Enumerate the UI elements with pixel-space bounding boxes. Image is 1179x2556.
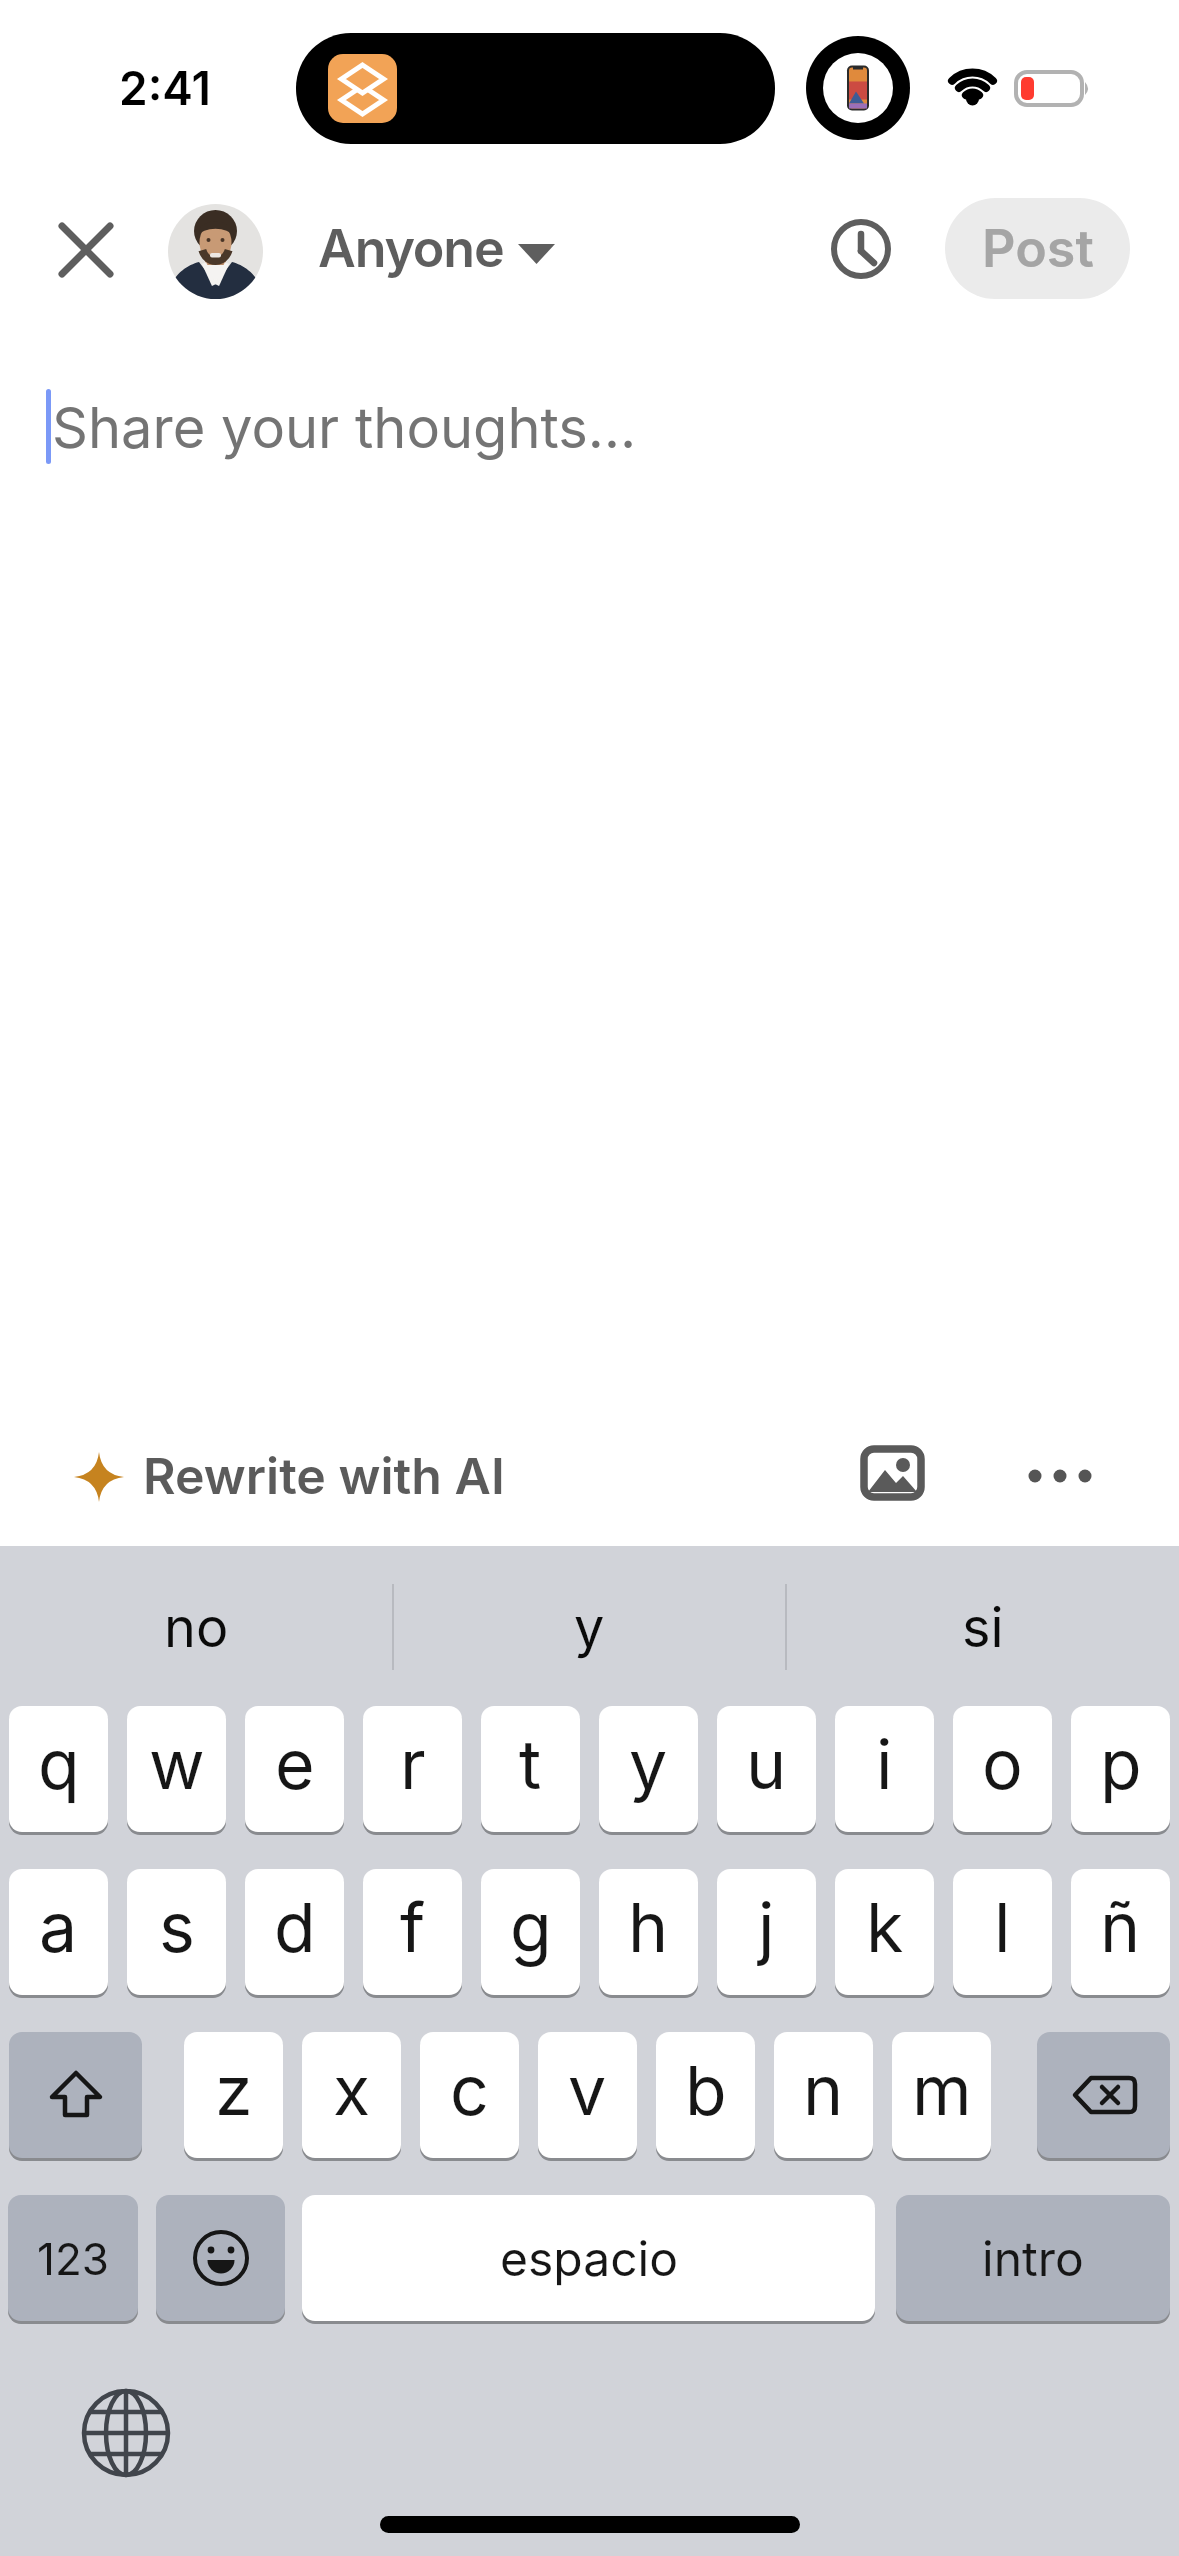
staticText: y bbox=[574, 1595, 605, 1660]
button[interactable]: i bbox=[835, 1706, 934, 1832]
staticText: c bbox=[450, 2049, 489, 2131]
staticText: b bbox=[685, 2049, 727, 2131]
button[interactable] bbox=[828, 216, 894, 282]
staticText: Share your thoughts… bbox=[52, 394, 637, 462]
staticText: u bbox=[746, 1723, 787, 1805]
button[interactable]: j bbox=[717, 1869, 816, 1995]
button[interactable]: ñ bbox=[1071, 1869, 1170, 1995]
staticText: z bbox=[215, 2049, 253, 2131]
button[interactable]: t bbox=[481, 1706, 580, 1832]
button[interactable] bbox=[78, 2385, 174, 2481]
button[interactable]: w bbox=[127, 1706, 226, 1832]
staticText: g bbox=[510, 1886, 552, 1968]
staticText: w bbox=[149, 1723, 205, 1805]
staticText: o bbox=[982, 1723, 1023, 1805]
staticText: q bbox=[38, 1723, 80, 1805]
staticText: k bbox=[866, 1886, 904, 1968]
staticText: s bbox=[159, 1886, 195, 1968]
staticText: j bbox=[758, 1886, 775, 1968]
button[interactable]: g bbox=[481, 1869, 580, 1995]
button[interactable] bbox=[156, 2195, 285, 2321]
staticText: 123 bbox=[37, 2232, 109, 2285]
staticText: d bbox=[274, 1886, 316, 1968]
button[interactable]: z bbox=[184, 2032, 283, 2158]
button[interactable]: y bbox=[393, 1580, 786, 1675]
button[interactable]: espacio bbox=[302, 2195, 875, 2321]
button[interactable]: h bbox=[599, 1869, 698, 1995]
button[interactable] bbox=[1037, 2032, 1170, 2158]
button[interactable]: c bbox=[420, 2032, 519, 2158]
staticText: espacio bbox=[500, 2229, 678, 2287]
button[interactable]: e bbox=[245, 1706, 344, 1832]
button[interactable]: b bbox=[656, 2032, 755, 2158]
staticText: p bbox=[1100, 1723, 1142, 1805]
button[interactable]: 123 bbox=[8, 2195, 138, 2321]
button[interactable]: d bbox=[245, 1869, 344, 1995]
staticText: y bbox=[629, 1723, 668, 1805]
button[interactable]: no bbox=[0, 1580, 393, 1675]
button[interactable]: f bbox=[363, 1869, 462, 1995]
button[interactable]: Post bbox=[945, 198, 1130, 299]
staticText: no bbox=[164, 1595, 229, 1660]
button[interactable]: y bbox=[599, 1706, 698, 1832]
button[interactable] bbox=[48, 212, 124, 288]
button[interactable]: Anyone bbox=[318, 198, 558, 299]
button[interactable] bbox=[9, 2032, 142, 2158]
staticText: v bbox=[568, 2049, 607, 2131]
button[interactable] bbox=[1015, 1452, 1105, 1500]
button[interactable]: r bbox=[363, 1706, 462, 1832]
button[interactable]: m bbox=[892, 2032, 991, 2158]
button[interactable]: Rewrite with AI bbox=[143, 1440, 563, 1512]
button[interactable]: s bbox=[127, 1869, 226, 1995]
button[interactable]: k bbox=[835, 1869, 934, 1995]
button[interactable] bbox=[855, 1446, 927, 1506]
staticText: a bbox=[39, 1886, 78, 1968]
staticText: m bbox=[912, 2049, 972, 2131]
staticText: n bbox=[803, 2049, 844, 2131]
staticText: t bbox=[519, 1723, 542, 1805]
button[interactable]: o bbox=[953, 1706, 1052, 1832]
button[interactable]: a bbox=[9, 1869, 108, 1995]
staticText: e bbox=[275, 1723, 315, 1805]
staticText: ñ bbox=[1100, 1886, 1141, 1968]
button[interactable]: l bbox=[953, 1869, 1052, 1995]
button[interactable]: si bbox=[786, 1580, 1179, 1675]
button[interactable]: v bbox=[538, 2032, 637, 2158]
staticText: si bbox=[962, 1595, 1004, 1660]
staticText: i bbox=[876, 1723, 893, 1805]
staticText: Anyone bbox=[318, 217, 504, 280]
staticText: 2:41 bbox=[119, 60, 211, 116]
staticText: intro bbox=[982, 2229, 1084, 2287]
staticText: h bbox=[628, 1886, 669, 1968]
button[interactable]: x bbox=[302, 2032, 401, 2158]
button[interactable]: n bbox=[774, 2032, 873, 2158]
staticText: f bbox=[400, 1886, 426, 1968]
button[interactable]: u bbox=[717, 1706, 816, 1832]
button[interactable]: p bbox=[1071, 1706, 1170, 1832]
button[interactable]: q bbox=[9, 1706, 108, 1832]
staticText: x bbox=[333, 2049, 371, 2131]
staticText: Rewrite with AI bbox=[143, 1446, 505, 1506]
staticText: l bbox=[994, 1886, 1011, 1968]
staticText: r bbox=[400, 1723, 426, 1805]
button[interactable]: intro bbox=[896, 2195, 1170, 2321]
button[interactable] bbox=[168, 204, 263, 299]
staticText: Post bbox=[982, 217, 1094, 280]
